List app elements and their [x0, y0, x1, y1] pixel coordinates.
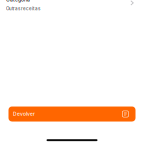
staticText: Categoria [6, 0, 30, 3]
button[interactable]: Categoria [0, 0, 144, 9]
staticText: Outras receitas [6, 6, 40, 11]
staticText: Devolver [13, 111, 35, 117]
button[interactable]: Outras receitas [0, 4, 144, 13]
button[interactable]: Devolver [8, 106, 135, 121]
